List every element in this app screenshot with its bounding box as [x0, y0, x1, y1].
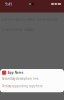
- staticText: Tertiary supporting copy here: [2, 84, 43, 88]
- staticText: App Name: [8, 71, 24, 74]
- staticText: 9:41: [5, 1, 12, 7]
- staticText: Secondary description line: [2, 77, 39, 80]
- staticText: Lorem ipsum dolor sit amet elit: [2, 16, 57, 22]
- staticText: Consectetur adipis: [2, 27, 34, 32]
